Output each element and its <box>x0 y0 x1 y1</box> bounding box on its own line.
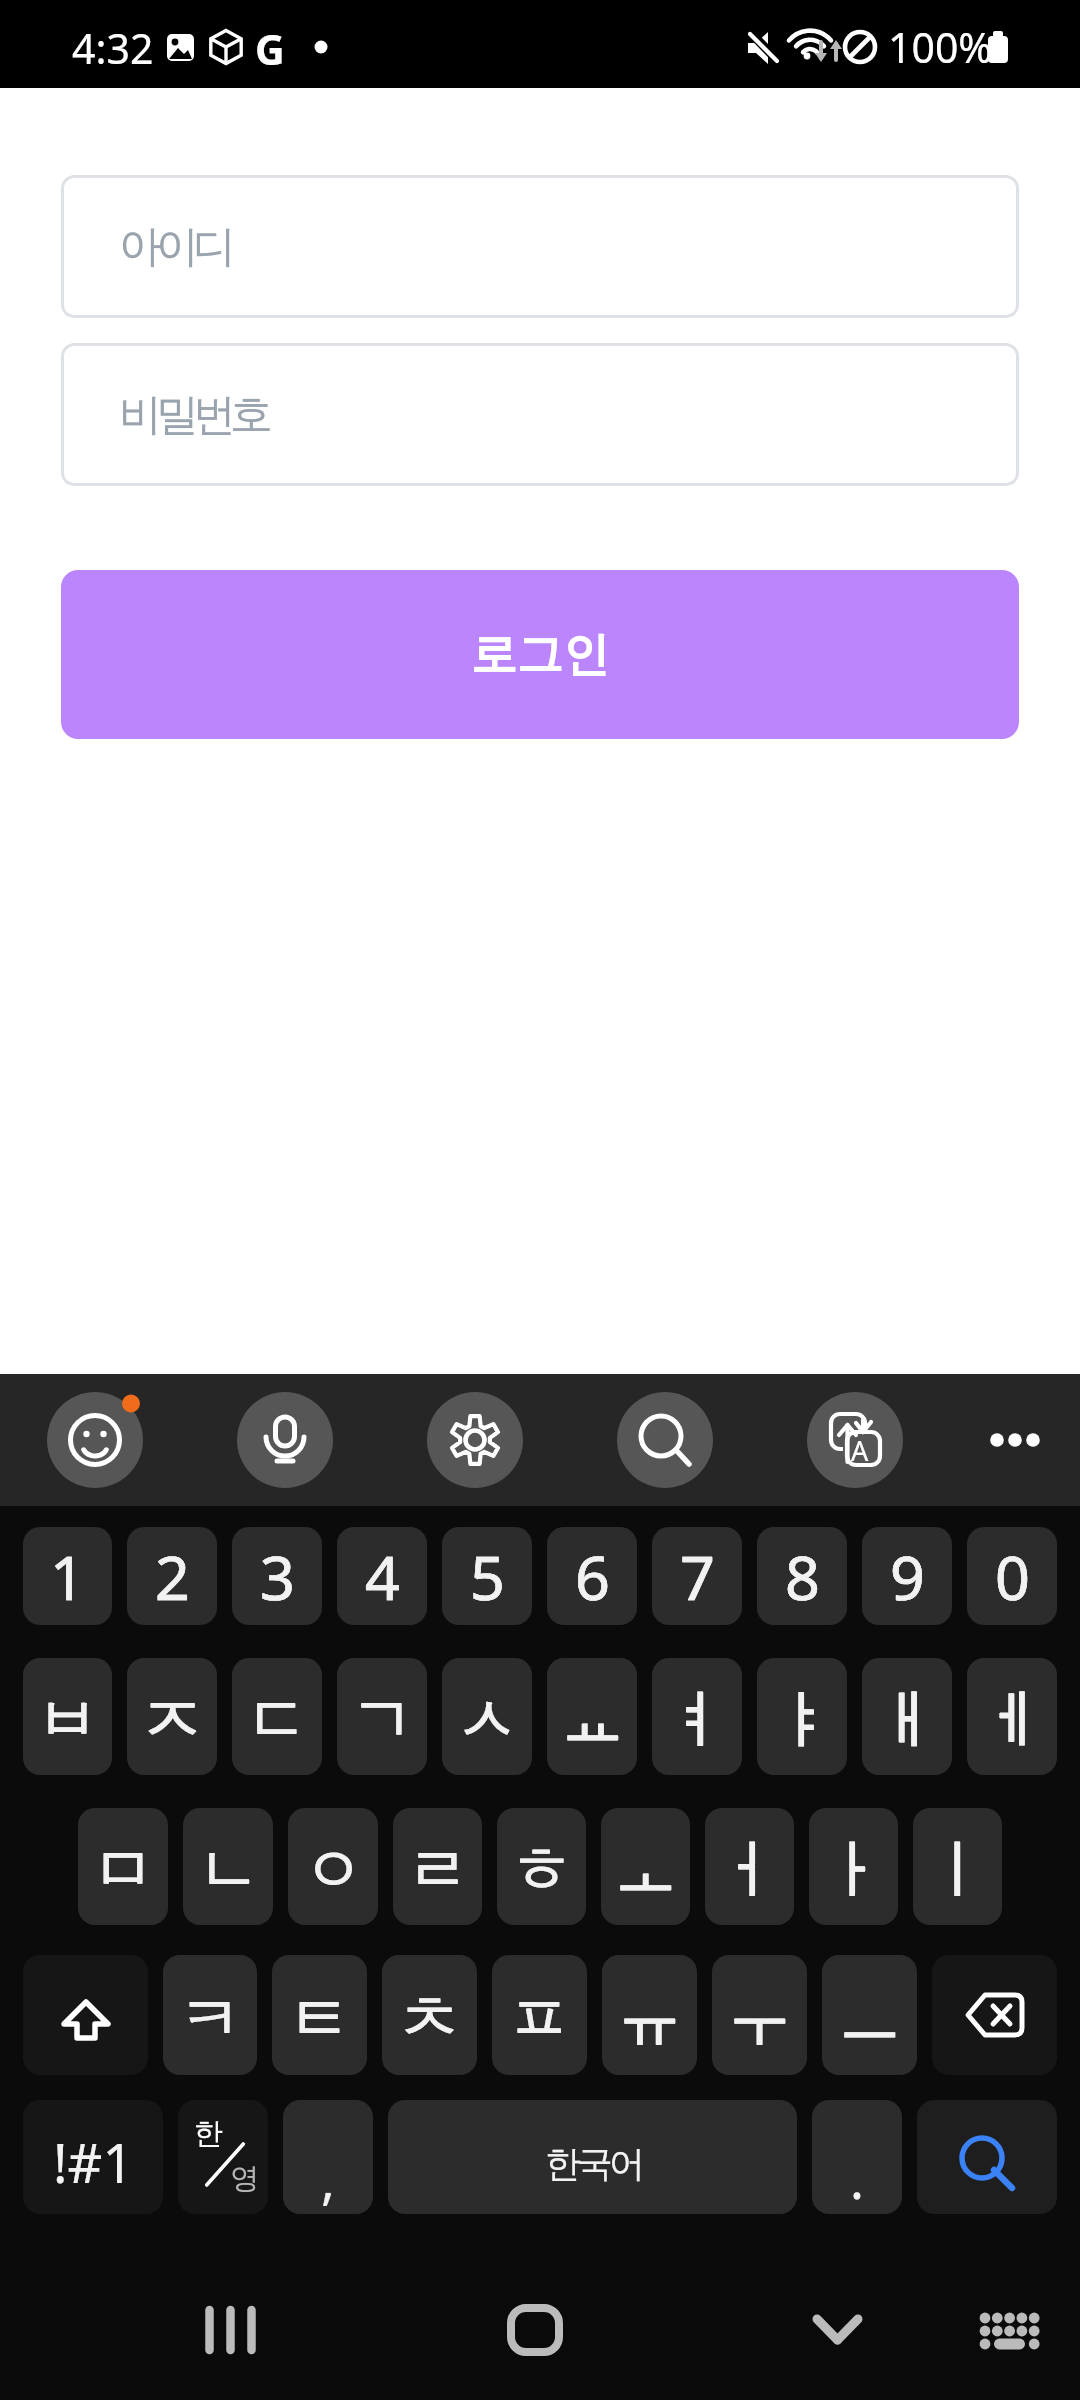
staticText: ㄴ <box>197 1830 260 1909</box>
staticText: 7 <box>680 1535 715 1618</box>
button[interactable]: ㅊ <box>382 1955 477 2075</box>
staticText: 100% <box>888 19 993 75</box>
button[interactable]: ㅔ <box>967 1658 1057 1775</box>
button[interactable]: ㅌ <box>272 1955 367 2075</box>
button[interactable]: ㅠ <box>602 1955 697 2075</box>
staticText: 8 <box>785 1535 820 1618</box>
staticText: ㅍ <box>508 1979 571 2058</box>
staticText: ㅈ <box>141 1680 204 1759</box>
staticText: ㅊ <box>398 1979 461 2058</box>
button[interactable]: Search <box>617 1392 713 1488</box>
staticText: A <box>851 1432 869 1469</box>
staticText: ㅕ <box>666 1680 729 1759</box>
button[interactable]: 로그인 <box>61 570 1019 739</box>
button[interactable]: . <box>812 2100 902 2214</box>
button[interactable]: ㅡ <box>822 1955 917 2075</box>
button[interactable]: Emoji <box>47 1392 143 1488</box>
button[interactable]: Recent apps <box>0 2254 270 2400</box>
staticText: ㅡ <box>838 1979 901 2058</box>
staticText: ㅑ <box>771 1680 834 1759</box>
button[interactable]: 7 <box>652 1527 742 1625</box>
button[interactable]: Shift <box>23 1955 148 2075</box>
button[interactable]: 6 <box>547 1527 637 1625</box>
staticText: ㄱ <box>351 1680 414 1759</box>
button[interactable]: 한국어 <box>388 2100 797 2214</box>
button[interactable]: ㅐ <box>862 1658 952 1775</box>
button[interactable]: ㅈ <box>127 1658 217 1775</box>
button[interactable]: 9 <box>862 1527 952 1625</box>
button[interactable]: ㄴ <box>183 1808 273 1925</box>
staticText: ㅗ <box>614 1830 677 1909</box>
staticText: ㅗ <box>614 1830 677 1909</box>
staticText: 1 <box>50 1535 85 1618</box>
button[interactable]: ㅇ <box>288 1808 378 1925</box>
button[interactable]: !#1 <box>23 2100 163 2214</box>
staticText: ㄹ <box>406 1830 469 1909</box>
staticText: 비밀번호 <box>122 388 270 442</box>
staticText: ㄷ <box>246 1680 309 1759</box>
button[interactable]: , <box>283 2100 373 2214</box>
button[interactable]: ㅕ <box>652 1658 742 1775</box>
button[interactable]: More options <box>967 1392 1063 1488</box>
button[interactable]: Backspace <box>932 1955 1057 2075</box>
button[interactable]: ㅋ <box>163 1955 257 2075</box>
button[interactable]: 3 <box>232 1527 322 1625</box>
staticText: ㅡ <box>838 1979 901 2058</box>
staticText: ㅐ <box>876 1680 939 1759</box>
staticText: 5 <box>470 1535 505 1618</box>
staticText: 로그인 <box>471 626 609 684</box>
button[interactable]: ㅎ <box>497 1808 586 1925</box>
button[interactable]: Voice input <box>237 1392 333 1488</box>
button[interactable]: Search <box>917 2100 1057 2214</box>
staticText: ㄱ <box>351 1680 414 1759</box>
button[interactable]: ㅓ <box>705 1808 794 1925</box>
staticText: 8 <box>785 1535 820 1618</box>
staticText: ㅌ <box>288 1979 351 2058</box>
button[interactable]: Settings <box>427 1392 523 1488</box>
button[interactable]: ㅅ <box>442 1658 532 1775</box>
button[interactable]: Korean English toggle <box>178 2100 268 2214</box>
staticText: ㅋ <box>179 1979 242 2058</box>
button[interactable]: ㅍ <box>492 1955 587 2075</box>
button[interactable]: 0 <box>967 1527 1057 1625</box>
staticText: ㅇ <box>302 1830 365 1909</box>
button[interactable]: ㅣ <box>913 1808 1002 1925</box>
staticText: . <box>850 2143 864 2214</box>
staticText: 4 <box>365 1535 400 1618</box>
staticText: ㅁ <box>92 1830 155 1909</box>
button[interactable]: ㅁ <box>78 1808 168 1925</box>
button[interactable]: 4 <box>337 1527 427 1625</box>
button[interactable]: Translate <box>807 1392 903 1488</box>
button[interactable]: 아이디 <box>61 175 1019 318</box>
button[interactable]: 1 <box>23 1527 112 1625</box>
staticText: ㅐ <box>876 1680 939 1759</box>
button[interactable]: ㄹ <box>393 1808 482 1925</box>
staticText: ㅠ <box>618 1979 681 2058</box>
staticText: , <box>321 2143 335 2214</box>
button[interactable]: ㅑ <box>757 1658 847 1775</box>
button[interactable]: Home <box>270 2254 540 2400</box>
button[interactable]: ㅜ <box>712 1955 807 2075</box>
staticText: ㅕ <box>666 1680 729 1759</box>
button[interactable]: Hide keyboard <box>540 2254 810 2400</box>
button[interactable]: Change keyboard <box>810 2254 1080 2400</box>
staticText: 3 <box>260 1535 295 1618</box>
staticText: 7 <box>680 1535 715 1618</box>
staticText: 0 <box>995 1535 1030 1618</box>
button[interactable]: ㅗ <box>601 1808 690 1925</box>
staticText: ㅏ <box>822 1830 885 1909</box>
button[interactable]: 5 <box>442 1527 532 1625</box>
staticText: ㅅ <box>456 1680 519 1759</box>
button[interactable]: 8 <box>757 1527 847 1625</box>
button[interactable]: 비밀번호 <box>61 343 1019 486</box>
staticText: ㄴ <box>197 1830 260 1909</box>
button[interactable]: ㅛ <box>547 1658 637 1775</box>
button[interactable]: 2 <box>127 1527 217 1625</box>
staticText: 2 <box>155 1535 190 1618</box>
button[interactable]: ㄱ <box>337 1658 427 1775</box>
button[interactable]: ㅏ <box>809 1808 898 1925</box>
button[interactable]: ㅂ <box>23 1658 112 1775</box>
staticText: ㅎ <box>510 1830 573 1909</box>
button[interactable]: ㄷ <box>232 1658 322 1775</box>
staticText: 영 <box>230 2160 259 2197</box>
